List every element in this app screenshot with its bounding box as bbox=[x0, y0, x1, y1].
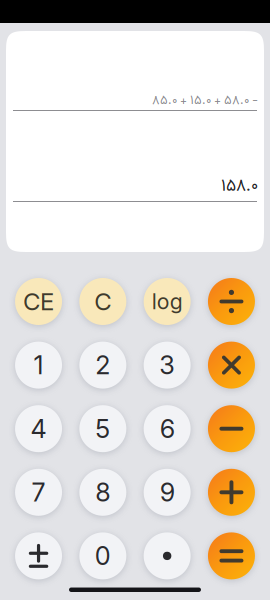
button[interactable]: log bbox=[144, 278, 191, 325]
button[interactable]: Decimal point bbox=[144, 532, 191, 579]
button[interactable]: Equals bbox=[208, 532, 255, 579]
staticText: 7 bbox=[31, 477, 45, 508]
staticText: 6 bbox=[160, 413, 175, 444]
staticText: C bbox=[94, 287, 111, 316]
staticText: CE bbox=[23, 287, 54, 316]
button[interactable]: C bbox=[79, 278, 126, 325]
staticText: 4 bbox=[30, 413, 46, 444]
button[interactable]: Divide bbox=[208, 278, 255, 325]
button[interactable]: 8 bbox=[79, 469, 126, 516]
staticText: 9 bbox=[160, 477, 175, 508]
button[interactable]: Multiply bbox=[208, 342, 255, 389]
staticText: 5 bbox=[95, 413, 110, 444]
button[interactable]: 0 bbox=[79, 532, 126, 579]
button[interactable]: 9 bbox=[144, 469, 191, 516]
staticText: ۱۵۸.۰ bbox=[221, 173, 258, 200]
button[interactable]: 5 bbox=[79, 405, 126, 452]
button[interactable]: 2 bbox=[79, 342, 126, 389]
button[interactable]: 7 bbox=[15, 469, 62, 516]
staticText: 1 bbox=[33, 350, 43, 380]
button[interactable]: Subtract bbox=[208, 405, 255, 452]
button[interactable]: Add bbox=[208, 469, 255, 516]
button[interactable]: 3 bbox=[144, 342, 191, 389]
staticText: log bbox=[152, 289, 183, 314]
staticText: ۸۵.۰ + ۱۵.۰ + ۵۸.۰ − bbox=[152, 91, 258, 111]
button[interactable]: Toggle sign bbox=[15, 532, 62, 579]
button[interactable]: 4 bbox=[15, 405, 62, 452]
staticText: 0 bbox=[95, 541, 111, 571]
button[interactable]: 6 bbox=[144, 405, 191, 452]
staticText: 3 bbox=[159, 350, 175, 380]
staticText: 8 bbox=[95, 477, 110, 508]
staticText: 2 bbox=[95, 350, 110, 380]
button[interactable]: CE bbox=[15, 278, 62, 325]
button[interactable]: 1 bbox=[15, 342, 62, 389]
